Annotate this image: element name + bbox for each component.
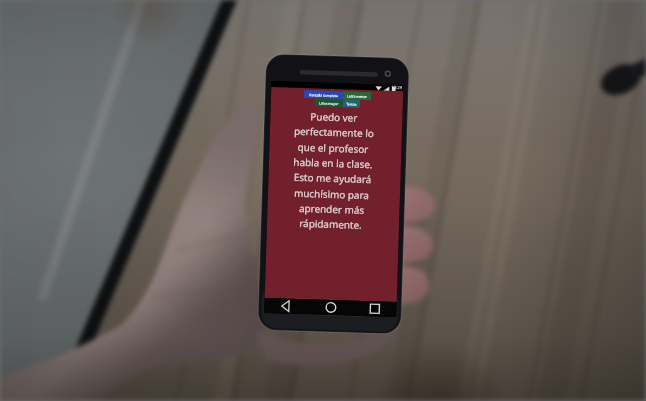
- staticText: Temas: [346, 101, 357, 107]
- button[interactable]: Letra menor: [343, 91, 371, 100]
- button[interactable]: Recents: [352, 301, 397, 317]
- staticText: Puedo ver: [310, 109, 358, 124]
- staticText: Letra menor: [347, 93, 367, 99]
- button[interactable]: Temas: [343, 99, 360, 108]
- button[interactable]: Back: [264, 298, 309, 314]
- button[interactable]: Pantalla completa: [304, 90, 343, 99]
- staticText: rápidamente.: [299, 216, 362, 231]
- staticText: aprender más: [298, 201, 365, 216]
- button[interactable]: Home: [308, 299, 353, 316]
- staticText: 12:29: [391, 85, 402, 91]
- staticText: Letra mayor: [319, 100, 339, 106]
- staticText: que el profesor: [297, 140, 369, 155]
- staticText: muchísimo para: [294, 186, 369, 201]
- staticText: perfectamente lo: [294, 124, 374, 139]
- staticText: Esto me ayudará: [293, 170, 372, 185]
- button[interactable]: Letra mayor: [315, 98, 343, 107]
- staticText: habla en la clase.: [293, 155, 373, 170]
- staticText: Pantalla completa: [309, 92, 338, 98]
